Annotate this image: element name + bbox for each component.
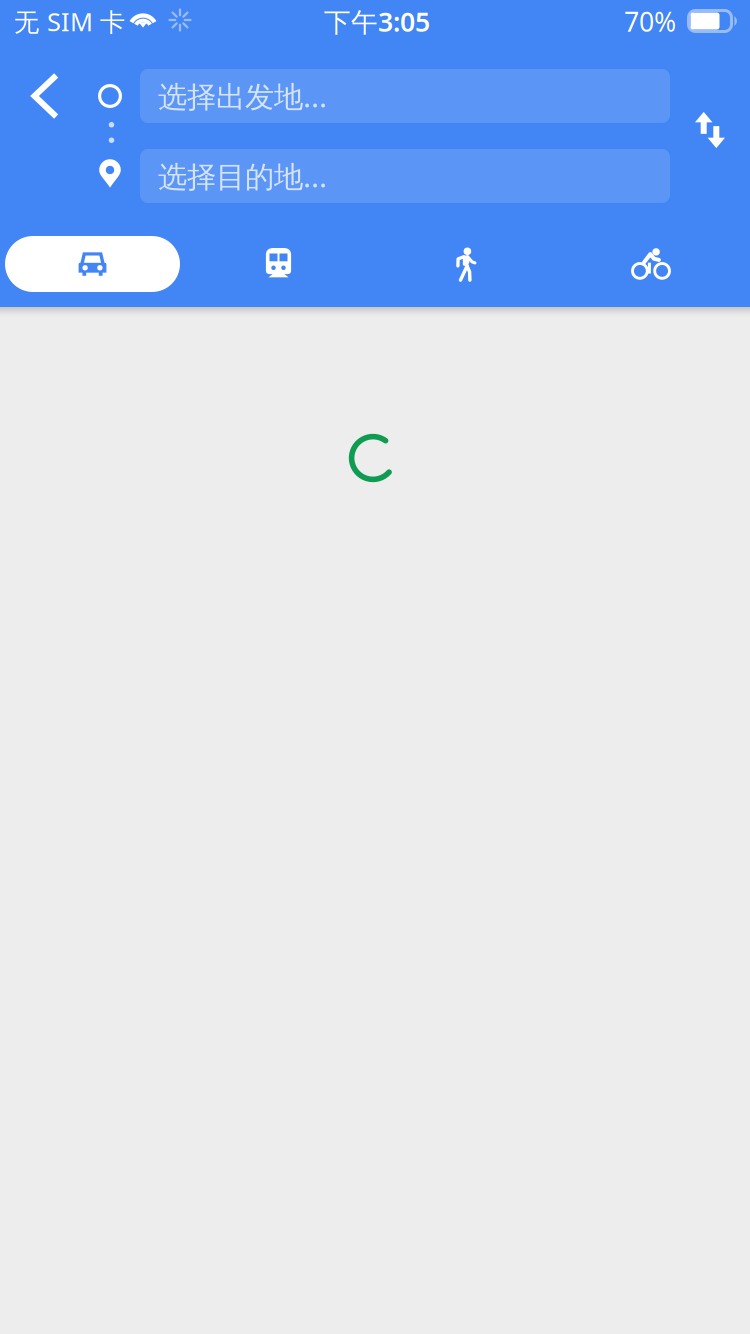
staticText: 无 SIM 卡 [14, 5, 125, 38]
button[interactable]: Swap origin and destination [674, 90, 746, 170]
staticText: 70% [624, 4, 676, 39]
staticText: 选择目的地... [158, 156, 327, 195]
button[interactable]: 选择目的地... [140, 149, 670, 203]
staticText: 选择出发地... [158, 76, 327, 115]
staticText: 下午3:05 [324, 4, 430, 39]
button[interactable]: 选择出发地... [140, 69, 670, 123]
button[interactable]: Cycling [596, 233, 706, 293]
button[interactable]: Walking [411, 234, 521, 294]
button[interactable]: Back [6, 58, 82, 134]
button[interactable]: Transit [223, 233, 333, 293]
button[interactable]: Driving [5, 236, 180, 292]
